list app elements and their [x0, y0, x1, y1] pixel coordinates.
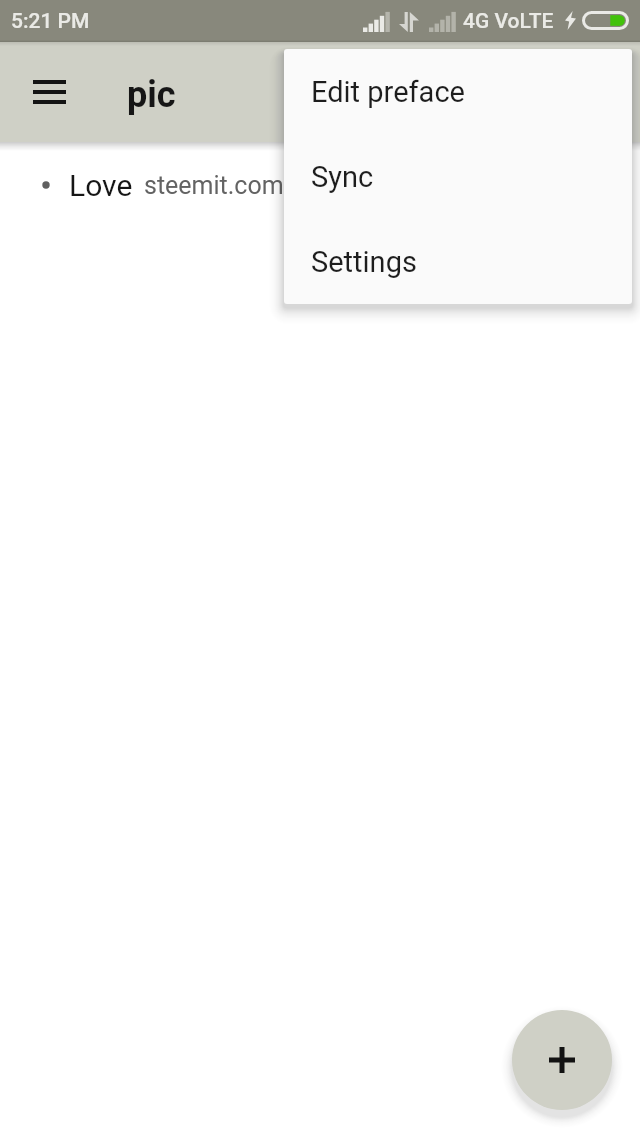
staticText: Edit preface — [311, 75, 465, 109]
staticText: steemit.com — [144, 171, 284, 200]
button[interactable]: Add — [512, 1010, 612, 1110]
staticText: 5:21 PM — [11, 9, 90, 34]
button[interactable]: Settings — [284, 219, 632, 304]
button[interactable]: Sync — [284, 134, 632, 219]
staticText: Sync — [311, 160, 374, 194]
staticText: Settings — [311, 245, 417, 279]
button[interactable]: Love — [0, 163, 640, 207]
staticText: 4G VoLTE — [463, 9, 554, 34]
staticText: pic — [127, 74, 176, 116]
staticText: Love — [69, 168, 133, 203]
button[interactable]: Open navigation drawer — [16, 59, 82, 125]
button[interactable]: Edit preface — [284, 49, 632, 134]
